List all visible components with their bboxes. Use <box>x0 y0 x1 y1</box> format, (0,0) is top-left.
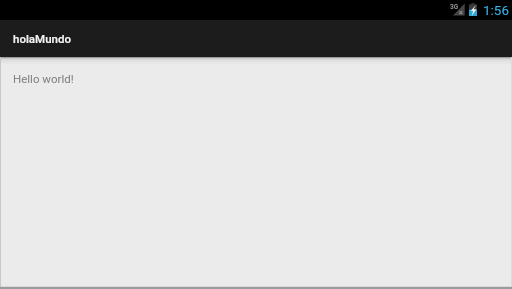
staticText: Hello world! <box>13 72 74 85</box>
staticText: 1:56 <box>483 2 510 18</box>
staticText: 3G <box>450 3 459 11</box>
button[interactable]: holaMundo app bar <box>0 20 512 57</box>
staticText: holaMundo <box>13 32 71 45</box>
